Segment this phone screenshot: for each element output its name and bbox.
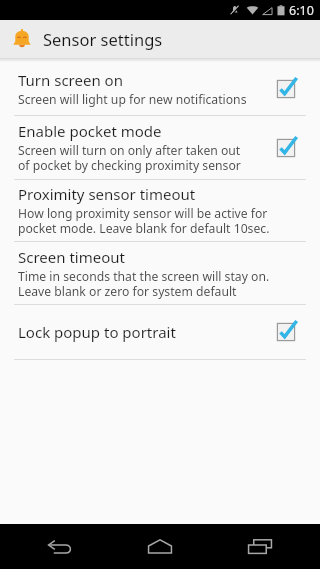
staticText: Screen will light up for new notificatio… (18, 91, 247, 108)
staticText: Time in seconds that the screen will sta… (18, 268, 270, 300)
staticText: Lock popup to portrait (18, 322, 176, 342)
staticText: Turn screen on (18, 70, 123, 90)
button[interactable]: Screen timeout (0, 242, 320, 304)
button[interactable]: Turn screen on (0, 62, 320, 115)
button[interactable]: Proximity sensor timeout (0, 180, 320, 241)
button[interactable]: Back (20, 524, 100, 569)
staticText: 6:10 (289, 2, 314, 19)
staticText: Sensor settings (43, 28, 163, 50)
button[interactable]: Recent apps (220, 524, 300, 569)
staticText: How long proximity sensor will be active… (18, 205, 270, 237)
button[interactable]: Home (120, 524, 200, 569)
staticText: Screen will turn on only after taken out… (18, 142, 241, 174)
staticText: Screen timeout (18, 247, 125, 267)
button[interactable]: Enable pocket mode (266, 116, 306, 179)
staticText: Enable pocket mode (18, 121, 162, 141)
button[interactable]: Enable pocket mode (0, 116, 320, 179)
button[interactable]: Lock popup to portrait (266, 305, 306, 359)
button[interactable]: Lock popup to portrait (0, 305, 320, 359)
staticText: Proximity sensor timeout (18, 184, 196, 204)
button[interactable]: Turn screen on (266, 62, 306, 115)
